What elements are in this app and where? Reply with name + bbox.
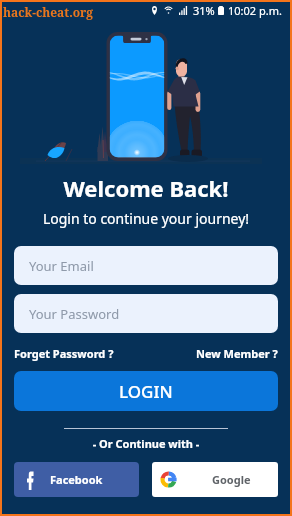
button[interactable]: Facebook: [14, 462, 139, 497]
button[interactable]: New Member ?: [196, 346, 278, 361]
staticText: Google: [212, 472, 251, 487]
staticText: Login to continue your journey!: [2, 209, 290, 228]
staticText: Your Email: [29, 257, 94, 275]
staticText: - Or Continue with -: [2, 436, 290, 451]
staticText: 10:02 p.m.: [228, 3, 282, 18]
button[interactable]: Your Email: [14, 246, 278, 285]
staticText: Welcome Back!: [2, 173, 290, 203]
button[interactable]: Google: [152, 462, 278, 497]
staticText: Your Password: [29, 305, 120, 323]
button[interactable]: LOGIN: [14, 371, 278, 411]
staticText: 31%: [193, 3, 215, 18]
button[interactable]: Your Password: [14, 294, 278, 333]
button[interactable]: Forget Password ?: [14, 346, 114, 361]
staticText: hack-cheat.org: [3, 4, 94, 20]
staticText: Facebook: [50, 472, 103, 487]
staticText: LOGIN: [119, 380, 173, 403]
